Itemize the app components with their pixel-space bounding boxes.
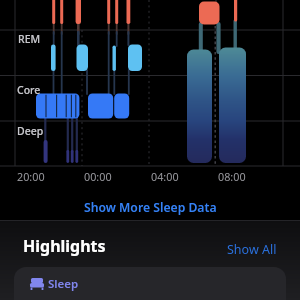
staticText: 00:00 (84, 169, 112, 184)
staticText: Highlights (23, 235, 106, 257)
staticText: REM (18, 32, 41, 46)
staticText: Sleep (48, 276, 79, 292)
staticText: Deep (17, 124, 44, 138)
staticText: 04:00 (151, 169, 179, 184)
button[interactable]: Sleep (14, 267, 286, 300)
button[interactable]: Show More Sleep Data (84, 199, 217, 216)
staticText: Show More Sleep Data (84, 199, 217, 216)
staticText: 20:00 (17, 169, 45, 184)
staticText: Core (17, 83, 41, 97)
staticText: 08:00 (218, 169, 246, 184)
staticText: Show All (227, 241, 277, 258)
button[interactable]: Show All (227, 241, 277, 258)
